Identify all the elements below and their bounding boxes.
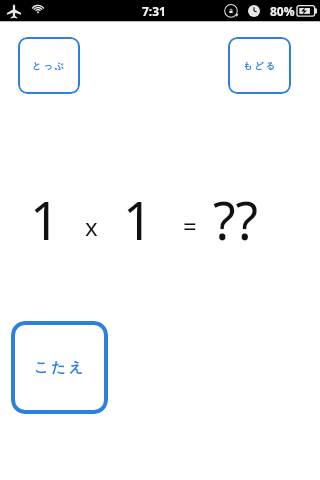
button[interactable]: もどる (228, 37, 291, 94)
staticText: こたえ (34, 359, 86, 377)
staticText: 1 (30, 184, 60, 255)
staticText: x (85, 210, 98, 243)
staticText: ?? (213, 184, 259, 255)
staticText: = (183, 209, 197, 242)
staticText: 80% (270, 3, 295, 19)
button[interactable]: とっぷ (18, 37, 80, 94)
staticText: もどる (243, 60, 277, 71)
staticText: 1 (123, 184, 153, 255)
staticText: とっぷ (32, 60, 66, 71)
staticText: 7:31 (142, 3, 166, 19)
button[interactable]: こたえ (11, 321, 108, 414)
